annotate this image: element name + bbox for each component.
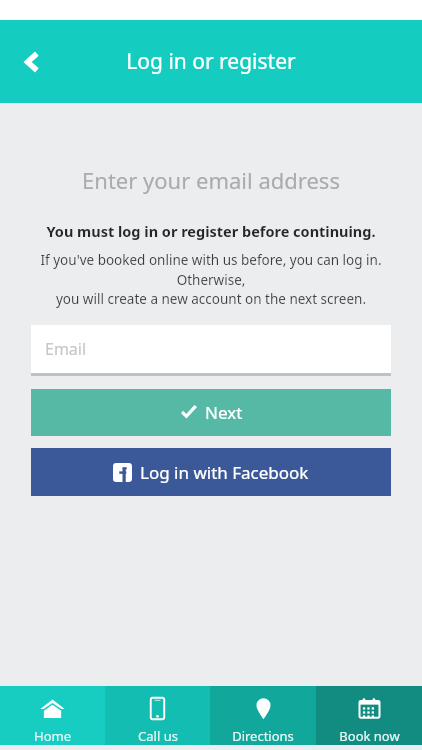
button[interactable]: Back — [6, 36, 58, 88]
staticText: Log in or register — [0, 47, 422, 76]
staticText: Call us — [138, 727, 178, 745]
button[interactable]: Book now — [316, 686, 422, 745]
button[interactable]: Email — [31, 325, 391, 376]
staticText: You must log in or register before conti… — [0, 221, 422, 241]
staticText: Enter your email address — [0, 165, 422, 195]
staticText: Email — [45, 338, 87, 360]
button[interactable]: Home — [0, 686, 105, 745]
button[interactable]: Directions — [210, 686, 316, 745]
button[interactable]: Call us — [105, 686, 210, 745]
staticText: Directions — [232, 727, 294, 745]
staticText: Book now — [339, 727, 400, 745]
staticText: Next — [205, 401, 243, 424]
staticText: If you've booked online with us before, … — [12, 251, 410, 308]
staticText: Home — [34, 727, 71, 745]
button[interactable]: Next — [31, 389, 391, 436]
button[interactable]: Log in with Facebook — [31, 448, 391, 496]
staticText: Log in with Facebook — [140, 461, 309, 484]
